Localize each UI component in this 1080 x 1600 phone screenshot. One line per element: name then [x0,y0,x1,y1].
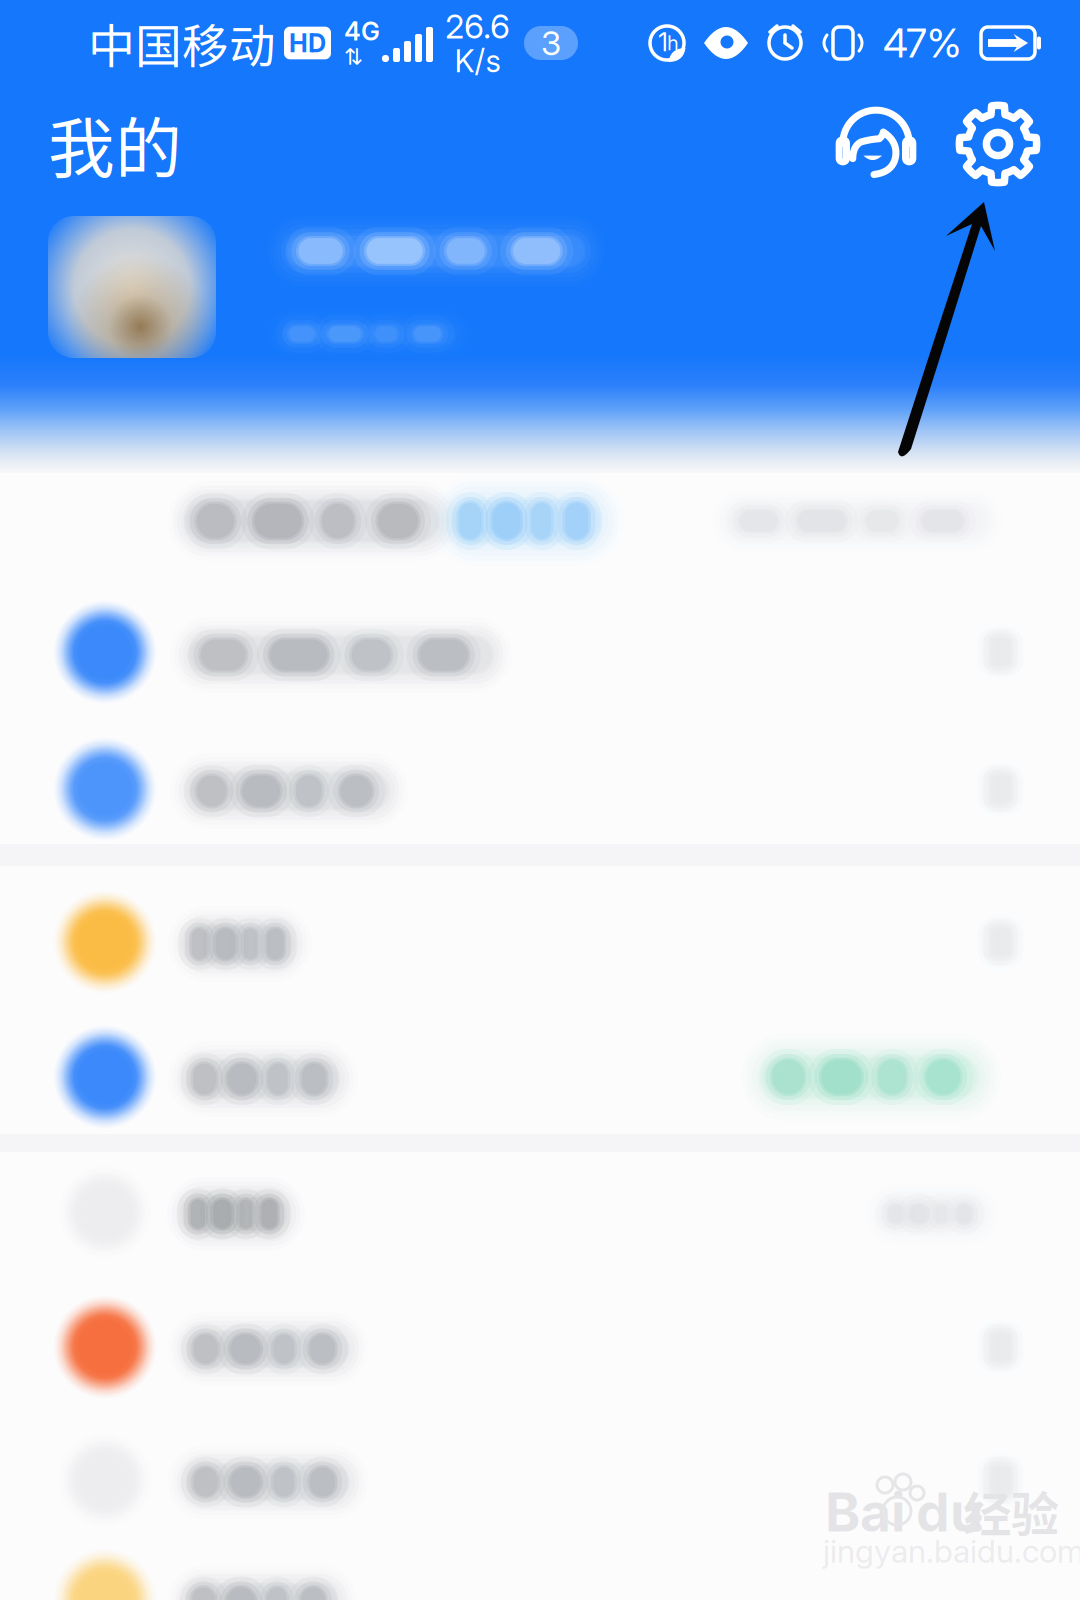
button[interactable]: Menu item [53,1548,157,1600]
staticText: 4G [344,16,380,47]
staticText: du [916,1480,983,1544]
staticText: 经验 [963,1476,1059,1546]
staticText: h [667,31,679,55]
staticText: HD [289,28,326,58]
button[interactable]: Customer service [834,102,918,186]
button[interactable]: Menu item [53,1295,157,1399]
button[interactable]: Menu item [53,890,157,994]
staticText: 我的 [48,96,182,192]
staticText: Bai [825,1480,905,1544]
staticText: jingyan.baidu.com [823,1532,1080,1570]
button[interactable]: Menu item [53,737,157,841]
staticText: 1 [658,27,668,57]
button[interactable]: Menu item [53,1025,157,1129]
staticText: 中国移动 [88,9,276,77]
staticText: 26.6 [445,6,510,47]
staticText: K/s [454,43,500,80]
button[interactable]: Menu item [53,600,157,704]
staticText: 47% [883,19,961,67]
staticText: ⇅ [344,44,363,70]
button[interactable]: Settings [956,102,1040,186]
staticText: 3 [541,23,561,63]
